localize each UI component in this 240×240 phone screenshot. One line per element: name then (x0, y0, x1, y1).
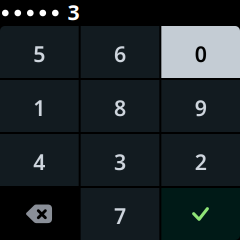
staticText: 6 (114, 40, 126, 68)
button[interactable]: Delete (0, 188, 79, 240)
button[interactable]: 9 (161, 80, 240, 132)
staticText: 4 (33, 148, 45, 176)
button[interactable]: 8 (81, 80, 159, 132)
button[interactable]: Confirm (161, 188, 240, 240)
button[interactable]: 7 (81, 188, 159, 240)
staticText: 7 (114, 202, 126, 230)
staticText: 8 (114, 94, 126, 122)
button[interactable]: 0 (161, 26, 240, 78)
staticText: 9 (195, 94, 207, 122)
staticText: 5 (33, 40, 45, 68)
button[interactable]: 5 (0, 26, 79, 78)
button[interactable]: 4 (0, 134, 79, 186)
staticText: 1 (33, 94, 45, 122)
staticText: 0 (195, 40, 207, 68)
button[interactable]: 6 (81, 26, 159, 78)
button[interactable]: 3 (81, 134, 159, 186)
staticText: 2 (195, 148, 207, 176)
staticText: 3 (68, 0, 80, 26)
button[interactable]: 1 (0, 80, 79, 132)
button[interactable]: 2 (161, 134, 240, 186)
staticText: 3 (114, 148, 126, 176)
